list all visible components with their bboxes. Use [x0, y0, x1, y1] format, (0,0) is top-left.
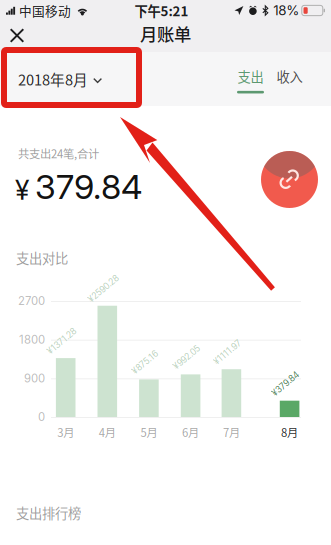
staticText: ¥379.84 [269, 378, 302, 389]
staticText: 2018年8月 [18, 68, 88, 90]
staticText: ¥1371.28 [44, 336, 79, 346]
staticText: 月账单 [140, 21, 191, 46]
staticText: 1800 [19, 333, 45, 346]
staticText: 7月 [223, 424, 240, 440]
staticText: 支出对比 [16, 248, 68, 267]
staticText: 379.84 [35, 166, 142, 207]
staticText: ¥ [15, 174, 29, 206]
staticText: 5月 [140, 424, 157, 440]
staticText: 支出排行榜 [16, 503, 81, 522]
button[interactable]: 收入 [270, 54, 309, 103]
staticText: 2700 [18, 294, 45, 308]
staticText: 4月 [99, 424, 116, 440]
staticText: ¥992.05 [171, 352, 203, 363]
button[interactable]: 2018年8月 [0, 54, 114, 104]
staticText: 共支出24笔,合计 [18, 145, 99, 161]
staticText: 6月 [182, 424, 199, 440]
staticText: 900 [24, 371, 45, 385]
staticText: 中国移动 [19, 1, 71, 20]
staticText: 收入 [276, 66, 302, 86]
staticText: 18% [273, 2, 299, 18]
staticText: 下午5:21 [134, 1, 188, 20]
staticText: 3月 [57, 424, 74, 440]
staticText: 支出 [237, 66, 263, 86]
staticText: ¥875.16 [129, 357, 160, 368]
staticText: ¥2590.28 [85, 283, 122, 294]
button[interactable]: Share monthly bill [261, 151, 318, 208]
button[interactable]: Close [2, 20, 32, 50]
staticText: ¥1111.97 [211, 347, 244, 357]
staticText: 0 [38, 410, 45, 424]
button[interactable]: 支出 [231, 54, 270, 103]
staticText: 8月 [281, 424, 298, 440]
